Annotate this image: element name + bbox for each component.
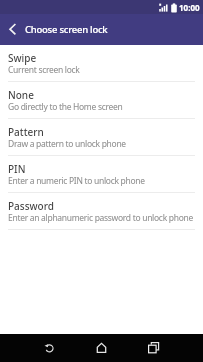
staticText: Pattern	[8, 125, 44, 139]
button[interactable]	[0, 14, 25, 45]
staticText: PIN	[8, 162, 26, 176]
staticText: None	[8, 88, 34, 102]
staticText: Enter a numeric PIN to unlock phone	[8, 175, 145, 187]
staticText: Go directly to the Home screen	[8, 101, 123, 113]
button[interactable]	[33, 334, 65, 362]
staticText: Draw a pattern to unlock phone	[8, 138, 126, 150]
staticText: Enter an alphanumeric password to unlock…	[8, 212, 193, 224]
button[interactable]	[85, 334, 117, 362]
staticText: Current screen lock	[8, 64, 80, 76]
button[interactable]: PIN	[0, 156, 203, 193]
staticText: Swipe	[8, 51, 37, 65]
button[interactable]: Pattern	[0, 119, 203, 156]
button[interactable]: None	[0, 82, 203, 119]
staticText: 10:00	[179, 2, 200, 13]
staticText: Password	[8, 199, 54, 213]
button[interactable]: Password	[0, 193, 203, 230]
button[interactable]	[137, 334, 169, 362]
button[interactable]: Swipe	[0, 45, 203, 82]
staticText: Choose screen lock	[25, 23, 108, 36]
